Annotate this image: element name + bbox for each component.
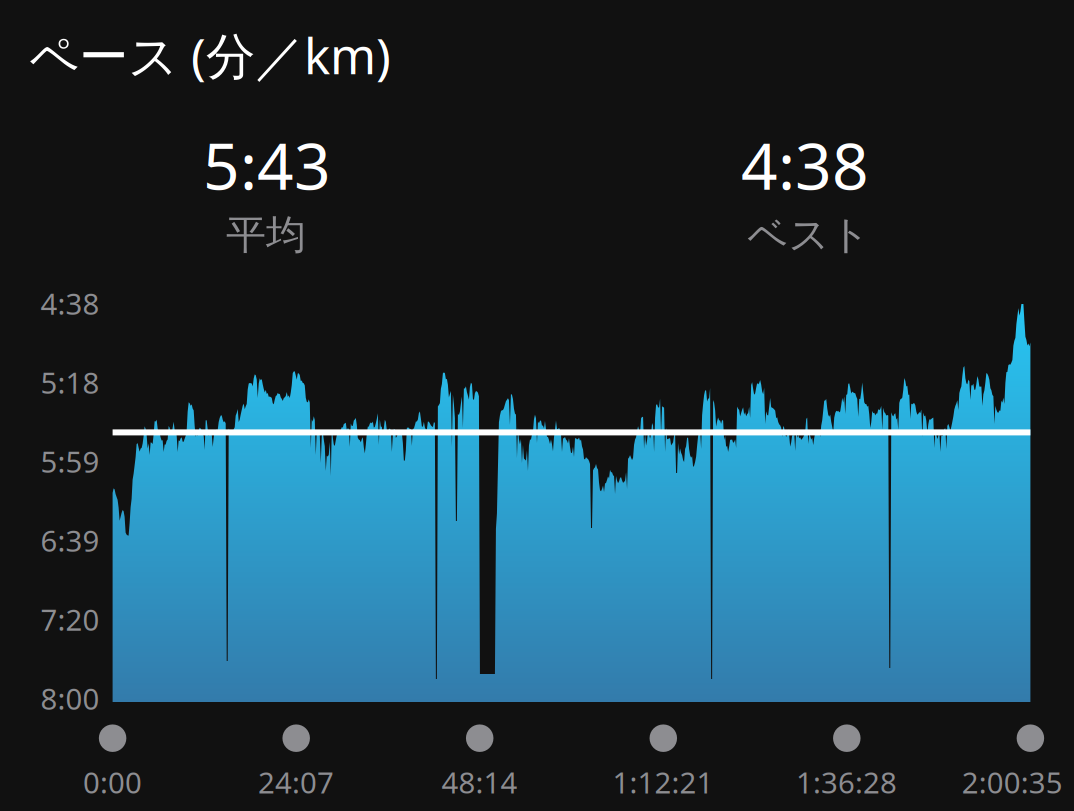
staticText: 24:07 <box>258 762 334 801</box>
staticText: 6:39 <box>40 521 99 560</box>
staticText: 0:00 <box>83 762 142 801</box>
staticText: 1:36:28 <box>796 762 897 801</box>
staticText: ベスト <box>747 210 870 259</box>
staticText: 48:14 <box>441 762 517 801</box>
staticText: 平均 <box>226 210 306 259</box>
staticText: 5:43 <box>203 122 331 207</box>
staticText: 8:00 <box>40 679 99 718</box>
staticText: 1:12:21 <box>612 762 713 801</box>
staticText: 5:18 <box>40 363 99 402</box>
staticText: 2:00:35 <box>962 762 1063 801</box>
staticText: 7:20 <box>40 600 99 639</box>
staticText: 4:38 <box>40 284 99 323</box>
staticText: 5:59 <box>40 442 99 481</box>
staticText: ペース (分／km) <box>29 22 391 88</box>
staticText: 4:38 <box>741 122 869 207</box>
